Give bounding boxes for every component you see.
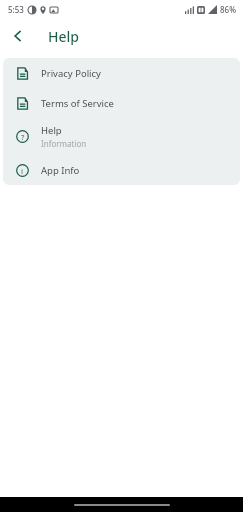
staticText: 5:53 <box>8 4 24 15</box>
staticText: App Info <box>41 164 80 177</box>
staticText: ? <box>21 132 25 142</box>
button[interactable]: Terms of Service <box>3 88 240 118</box>
button[interactable]: ? <box>3 118 240 155</box>
staticText: 86% <box>220 4 236 15</box>
staticText: Help <box>41 124 62 137</box>
staticText: Information <box>41 138 87 149</box>
button[interactable]: Back <box>4 22 32 50</box>
staticText: Help <box>48 27 79 46</box>
staticText: Privacy Policy <box>41 67 101 80</box>
button[interactable]: i <box>3 155 240 185</box>
staticText: i <box>21 166 24 176</box>
button[interactable]: Privacy Policy <box>3 58 240 88</box>
staticText: Terms of Service <box>41 97 114 110</box>
